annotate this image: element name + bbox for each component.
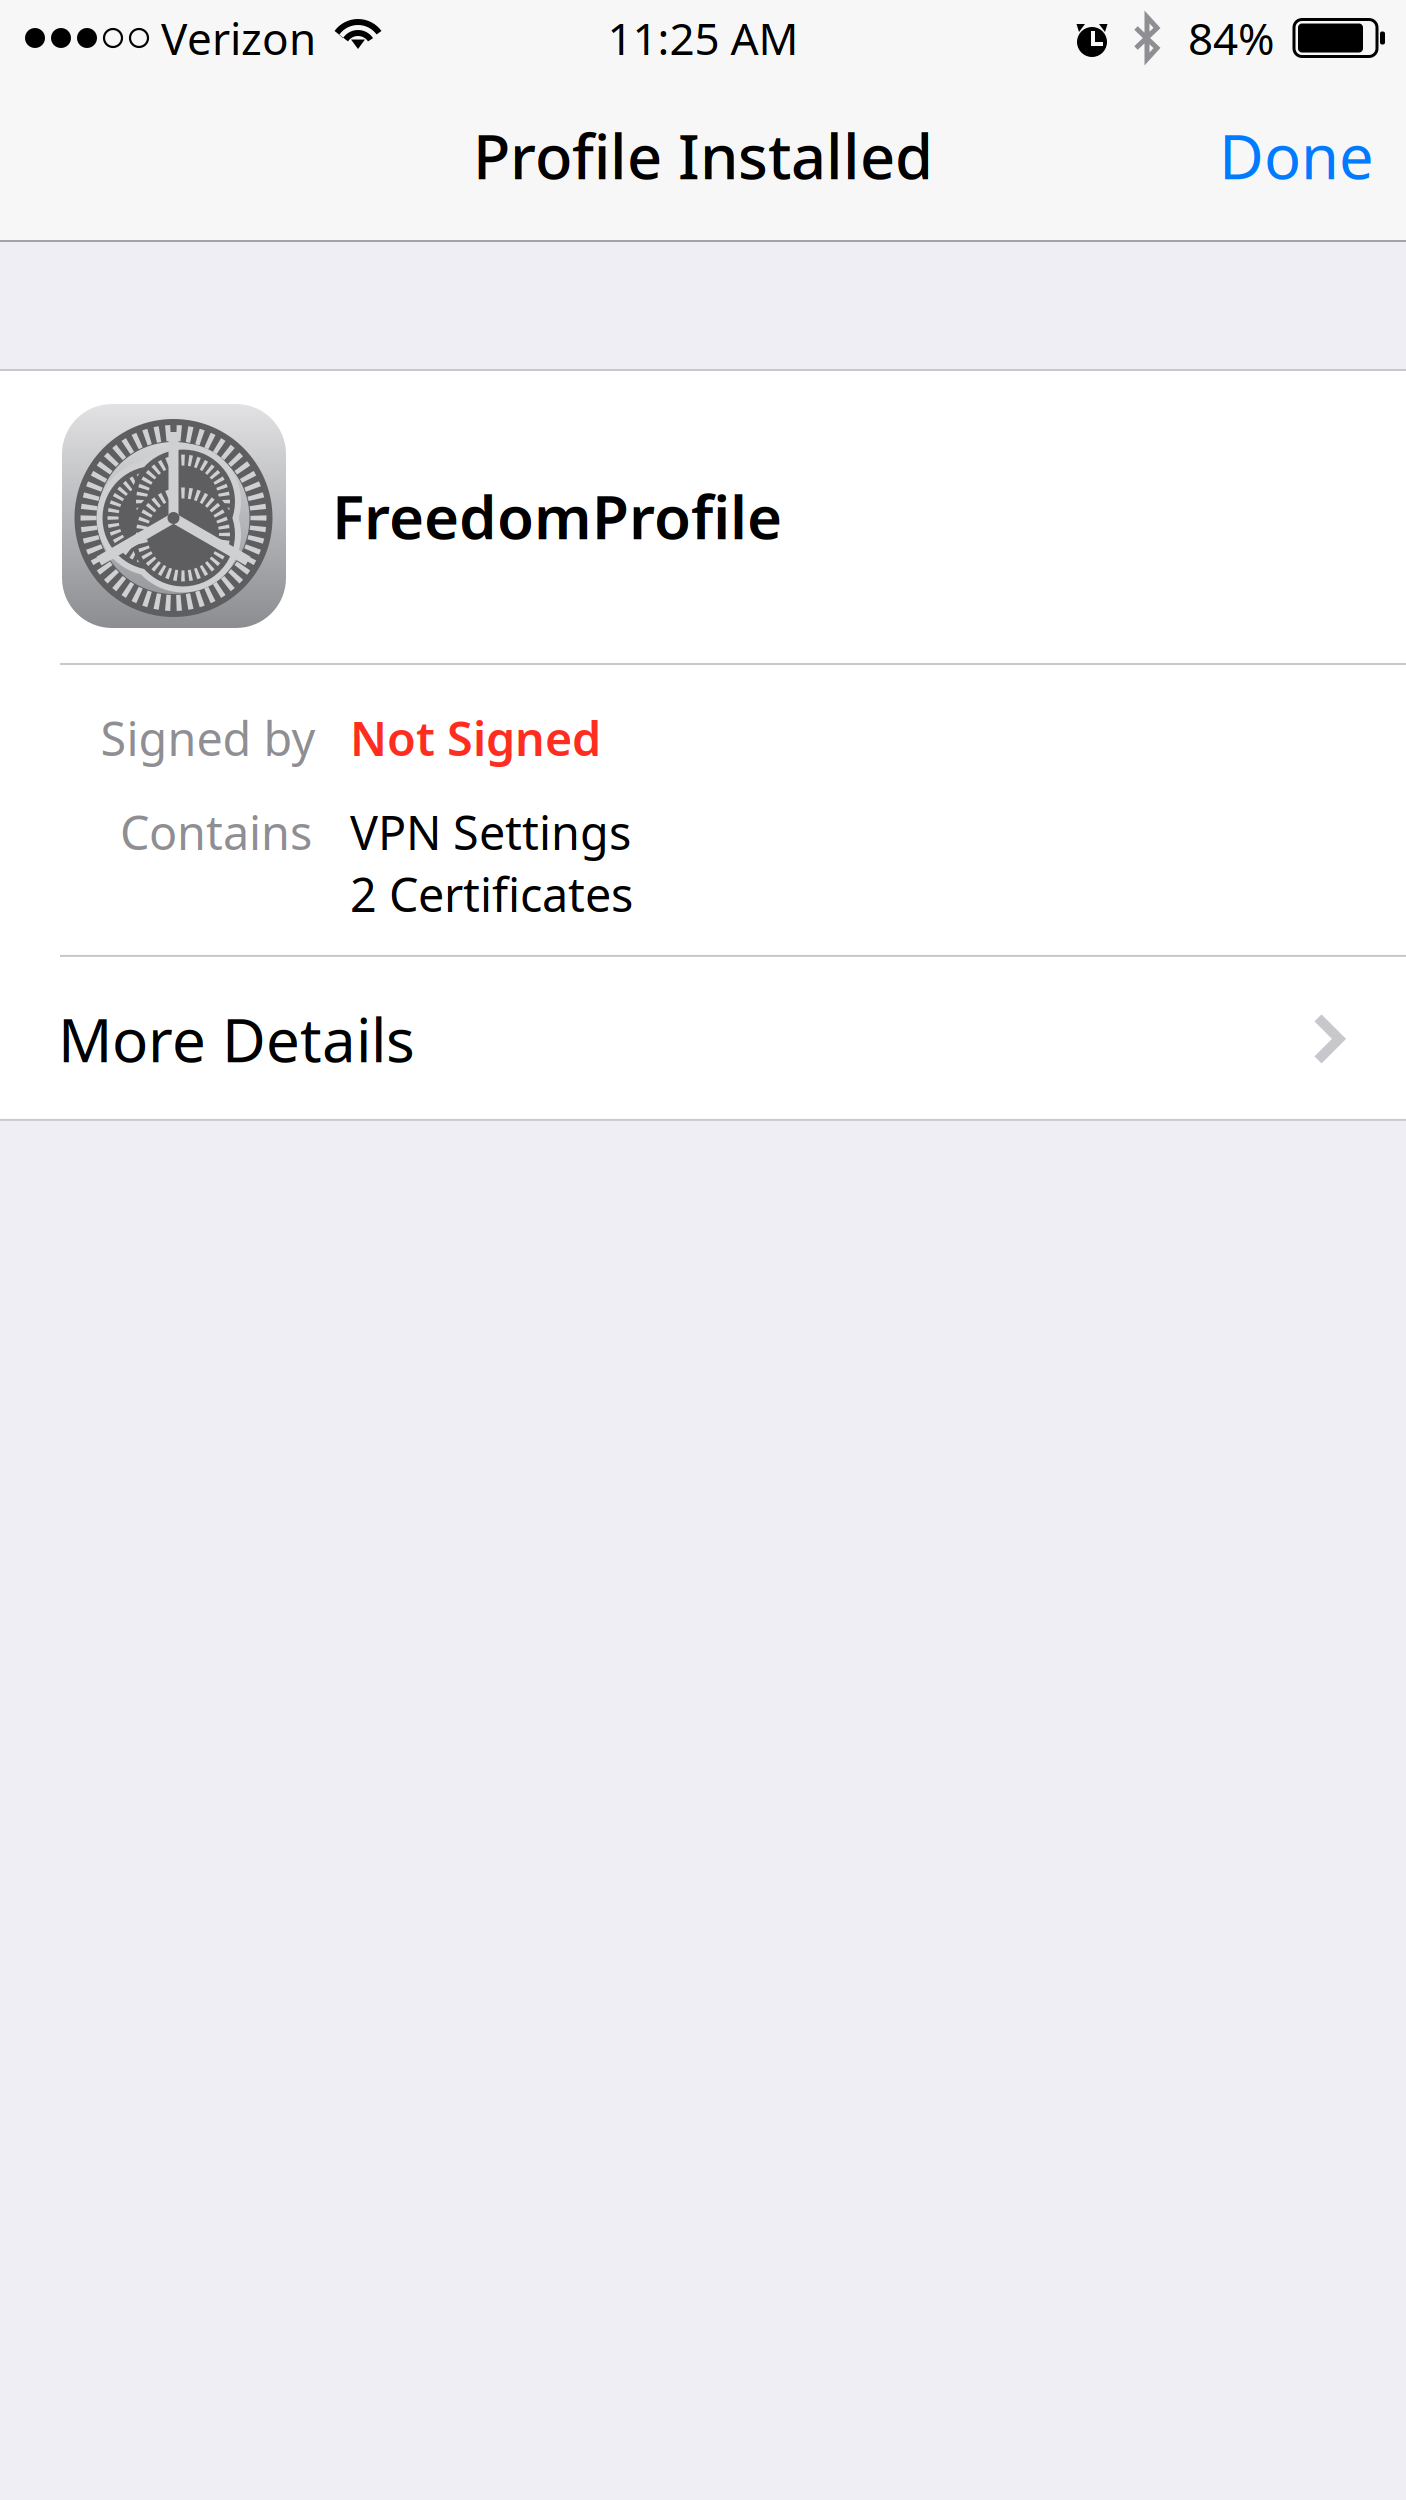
staticText: VPN Settings <box>350 801 631 863</box>
staticText: Not Signed <box>350 707 601 769</box>
staticText: Profile Installed <box>473 115 933 196</box>
staticText: Done <box>1219 115 1374 196</box>
staticText: Contains <box>120 801 312 863</box>
staticText: Signed by <box>100 707 315 769</box>
staticText: 11:25 AM <box>607 9 798 67</box>
staticText: Verizon <box>161 9 316 67</box>
staticText: 2 Certificates <box>350 863 633 925</box>
staticText: 84% <box>1188 9 1275 67</box>
staticText: More Details <box>58 999 415 1079</box>
button[interactable]: Done <box>1187 87 1406 224</box>
button[interactable]: More Details <box>0 957 1406 1121</box>
staticText: FreedomProfile <box>332 476 782 556</box>
